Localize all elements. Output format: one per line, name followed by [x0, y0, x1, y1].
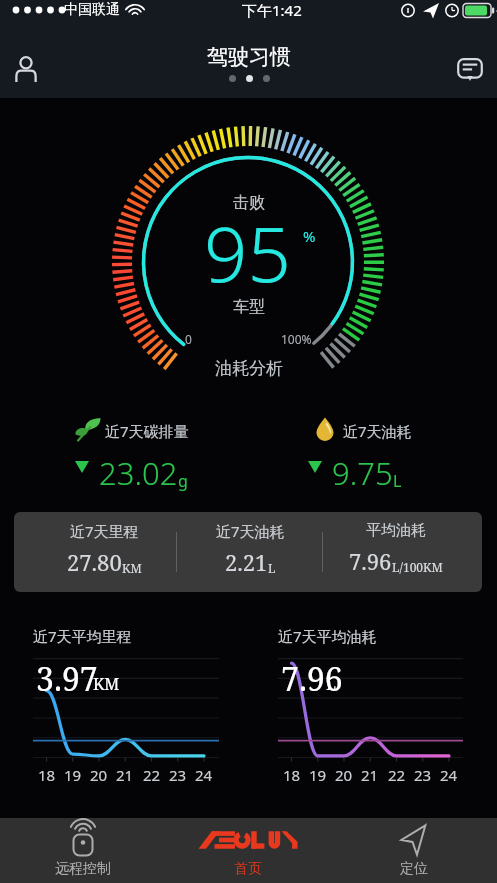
staticText: 近7天平均里程	[33, 626, 132, 646]
staticText: 0	[185, 331, 192, 347]
staticText: %	[303, 226, 316, 246]
staticText: 车型	[233, 297, 265, 317]
staticText: 近7天平均油耗	[278, 626, 377, 646]
staticText: 近7天油耗	[216, 521, 285, 541]
button[interactable]: 平均油耗	[323, 512, 469, 592]
staticText: 平均油耗	[366, 521, 426, 540]
button[interactable]: 首页	[165, 818, 331, 883]
staticText: 击败	[233, 193, 265, 213]
staticText: 近7天碳排量	[105, 421, 189, 441]
button[interactable]: 远程控制	[0, 818, 165, 883]
staticText: 18	[283, 765, 301, 785]
staticText: 100%	[281, 331, 312, 347]
button[interactable]: Profile	[4, 47, 48, 91]
button[interactable]: 近7天里程	[31, 512, 177, 592]
staticText: KM	[93, 673, 120, 695]
staticText: 22	[388, 765, 406, 785]
staticText: 7.96	[349, 546, 392, 576]
staticText: 近7天油耗	[343, 421, 412, 441]
staticText: 21	[361, 765, 379, 785]
staticText: 24	[440, 765, 458, 785]
button[interactable]: 定位	[331, 818, 497, 883]
staticText: 23	[414, 765, 432, 785]
staticText: 23	[169, 765, 187, 785]
staticText: L	[268, 560, 276, 576]
staticText: 首页	[234, 860, 262, 878]
staticText: 近7天里程	[70, 521, 139, 541]
staticText: 9.75	[332, 452, 393, 494]
staticText: 中国联通	[64, 1, 120, 19]
staticText: 2.21	[225, 547, 268, 577]
staticText: 21	[116, 765, 134, 785]
staticText: g	[178, 470, 188, 492]
staticText: 7.96	[281, 657, 343, 701]
staticText: L/100KM	[392, 559, 443, 575]
staticText: 23.02	[99, 452, 178, 494]
staticText: KM	[122, 560, 142, 576]
staticText: 3.97	[36, 657, 98, 701]
staticText: 20	[335, 765, 353, 785]
staticText: L	[393, 470, 402, 492]
button[interactable]: Messages	[448, 47, 492, 91]
staticText: 远程控制	[55, 860, 111, 878]
button[interactable]: 近7天油耗	[177, 512, 323, 592]
staticText: 24	[195, 765, 213, 785]
staticText: L	[326, 673, 336, 695]
staticText: 27.80	[67, 547, 122, 577]
staticText: 22	[143, 765, 161, 785]
staticText: 18	[38, 765, 56, 785]
staticText: 20	[90, 765, 108, 785]
staticText: 下午1:42	[242, 0, 302, 20]
staticText: 95	[204, 201, 291, 305]
staticText: 驾驶习惯	[207, 44, 291, 70]
staticText: 定位	[400, 860, 428, 878]
staticText: 19	[309, 765, 327, 785]
staticText: 油耗分析	[215, 358, 283, 379]
staticText: 19	[64, 765, 82, 785]
